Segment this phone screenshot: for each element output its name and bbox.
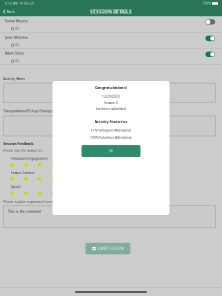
- staticText: Activity Notes: [3, 76, 25, 81]
- button[interactable]: Adam Stone: [0, 49, 222, 64]
- staticText: has been submitted: [96, 107, 126, 111]
- button[interactable]: Janis Millerton: [0, 33, 222, 48]
- staticText: Janis Millerton: [5, 35, 28, 40]
- staticText: OK: [109, 149, 113, 153]
- staticText: Overall: [10, 185, 20, 189]
- staticText: Session 5: [104, 101, 118, 105]
- staticText: 100%: [202, 2, 210, 5]
- staticText: Participant Engagement: [10, 156, 47, 160]
- staticText: Emma Meyers: [5, 19, 28, 23]
- staticText: Transportation/Pickup Changes: [3, 109, 53, 113]
- button[interactable]: OK: [81, 145, 140, 157]
- button[interactable]: Emma Meyers: [0, 16, 222, 32]
- staticText: (0): [15, 27, 19, 31]
- staticText: Adam Stone: [5, 51, 24, 55]
- staticText: Please explain responses if needed: [3, 200, 57, 204]
- button[interactable]: Back: [0, 7, 18, 16]
- staticText: Session Content: [10, 171, 34, 175]
- staticText: 12/20/2023: [102, 95, 120, 99]
- staticText: Back: [7, 9, 15, 14]
- staticText: Please rate the session on:: [3, 148, 43, 152]
- staticText: 8:10 AM Fri Dec 20: [5, 2, 34, 5]
- staticText: (0): [15, 43, 19, 47]
- staticText: 100% Volunteer Attendance: [90, 136, 132, 140]
- staticText: Session Feedback: [3, 141, 33, 146]
- button[interactable]: SUBMIT SESSION: [85, 243, 130, 254]
- staticText: SESSION DETAILS: [90, 8, 132, 15]
- staticText: Activity Statistics: [94, 119, 127, 124]
- staticText: SUBMIT SESSION: [97, 247, 123, 251]
- staticText: (0): [15, 59, 19, 63]
- staticText: Congratulations!: [95, 85, 127, 90]
- staticText: This is the comment: [8, 209, 41, 214]
- staticText: 87% Participant Attendance: [90, 128, 131, 132]
